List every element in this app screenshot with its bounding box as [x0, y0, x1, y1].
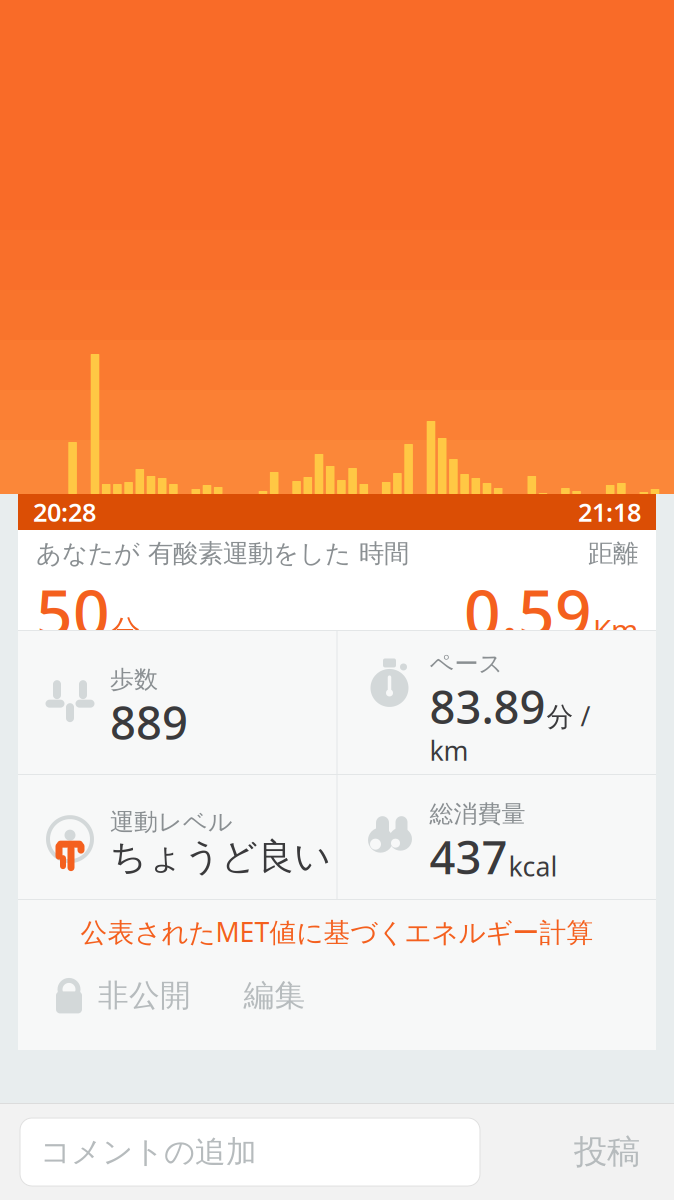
staticText: ちょうど良い [110, 835, 331, 879]
staticText: 距離 [588, 538, 638, 569]
staticText: あなたが 有酸素運動をした 時間 [36, 538, 409, 569]
staticText: 0.59 [464, 569, 592, 654]
button[interactable]: 非公開 [18, 975, 191, 1015]
staticText: 歩数 [110, 665, 158, 694]
staticText: 編集 [243, 977, 305, 1014]
staticText: 50 [36, 569, 110, 654]
staticText: 総消費量 [429, 799, 525, 829]
staticText: 分 [111, 613, 140, 649]
button[interactable]: 公表されたMET値に基づくエネルギー計算 [18, 900, 656, 963]
staticText: km [429, 733, 468, 768]
staticText: 83.89 [429, 676, 545, 737]
staticText: 運動レベル [110, 807, 233, 837]
staticText: 投稿 [574, 1131, 640, 1172]
staticText: 437 [429, 827, 507, 887]
staticText: 889 [110, 692, 188, 752]
staticText: Km [593, 610, 638, 649]
staticText: 非公開 [98, 977, 191, 1014]
button[interactable]: 編集 [243, 977, 305, 1014]
staticText: 分 / [546, 698, 590, 734]
staticText: コメントの追加 [40, 1133, 257, 1171]
staticText: 21:18 [578, 495, 641, 529]
staticText: 20:28 [33, 495, 96, 529]
staticText: kcal [508, 848, 557, 884]
staticText: ペース [429, 649, 503, 678]
button[interactable]: 投稿 [550, 1118, 664, 1186]
button[interactable]: コメントの追加 [20, 1118, 480, 1186]
staticText: 公表されたMET値に基づくエネルギー計算 [80, 914, 593, 949]
